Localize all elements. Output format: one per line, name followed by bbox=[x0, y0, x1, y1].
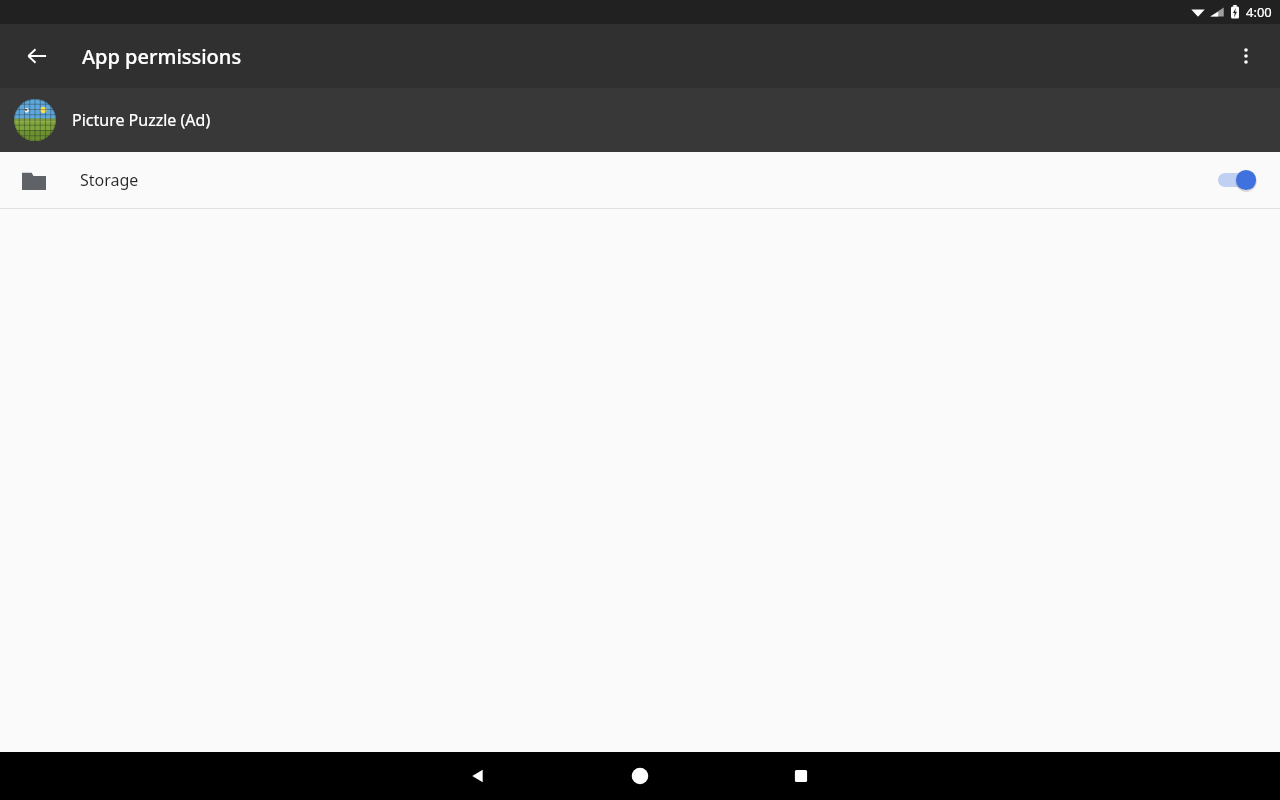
button[interactable]: Back bbox=[454, 752, 502, 800]
button[interactable]: More options bbox=[1222, 32, 1270, 80]
button[interactable]: Storage permission toggle bbox=[1208, 152, 1272, 208]
button[interactable]: Picture Puzzle (Ad) bbox=[0, 88, 1280, 152]
staticText: Picture Puzzle (Ad) bbox=[72, 109, 211, 131]
button[interactable]: Home bbox=[616, 752, 664, 800]
button[interactable]: Recents bbox=[777, 752, 825, 800]
staticText: App permissions bbox=[82, 43, 242, 70]
button[interactable]: Back bbox=[13, 32, 61, 80]
staticText: 4:00 bbox=[1246, 3, 1272, 21]
staticText: Storage bbox=[80, 169, 139, 191]
button[interactable]: Storage bbox=[0, 152, 1280, 208]
